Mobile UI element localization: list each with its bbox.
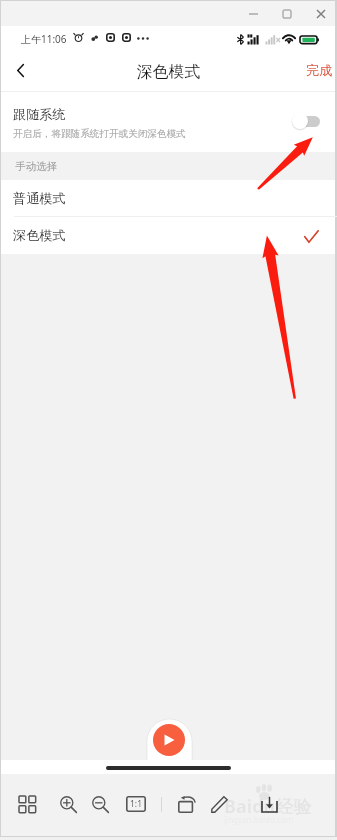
button[interactable]: Close (306, 1, 336, 26)
button[interactable]: 普通模式 (1, 180, 335, 217)
button[interactable]: 跟随系统 (1, 92, 335, 152)
staticText: 跟随系统 (13, 106, 66, 123)
button[interactable]: Maximize (272, 1, 302, 26)
button[interactable]: Zoom out (85, 789, 115, 819)
button[interactable]: Back (1, 51, 41, 92)
staticText: 开启后，将跟随系统打开或关闭深色模式 (13, 128, 186, 140)
staticText: 上午11:06 (21, 32, 67, 46)
staticText: 普通模式 (13, 190, 66, 207)
button[interactable]: Play (153, 724, 185, 756)
staticText: 深色模式 (13, 227, 66, 244)
button[interactable]: Zoom in (53, 789, 83, 819)
button[interactable]: Minimize (238, 1, 268, 26)
button[interactable]: Edit (204, 789, 234, 819)
button[interactable]: Download (254, 789, 284, 819)
staticText: 手动选择 (15, 160, 58, 173)
button[interactable]: Actual size (126, 796, 146, 812)
button[interactable]: Follow system switch (290, 111, 320, 131)
staticText: Baidu经验 (224, 794, 312, 819)
button[interactable]: 完成 (299, 51, 335, 92)
staticText: 深色模式 (137, 62, 201, 82)
staticText: 完成 (306, 62, 333, 79)
button[interactable]: 深色模式 (1, 217, 335, 254)
button[interactable]: Thumbnails (12, 789, 42, 819)
button[interactable]: Rotate (171, 789, 201, 819)
staticText: 1:1 (130, 798, 143, 810)
